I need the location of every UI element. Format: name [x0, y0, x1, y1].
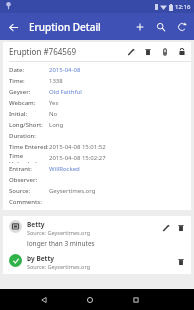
staticText: 2015-04-08 15:02:27 — [49, 154, 106, 162]
staticText: Source: — [9, 187, 31, 195]
staticText: Long — [49, 121, 64, 129]
staticText: 12:16 — [175, 3, 191, 11]
button[interactable]: Delete comment — [173, 254, 188, 269]
staticText: Geyser: — [9, 88, 31, 96]
button[interactable]: Add — [129, 16, 150, 37]
button[interactable]: Edit comment — [158, 220, 173, 235]
staticText: Time: — [9, 77, 25, 85]
button[interactable]: Recent apps — [126, 290, 146, 310]
button[interactable]: Delete — [139, 43, 156, 60]
staticText: by Betty — [27, 254, 54, 263]
staticText: Webcam: — [9, 99, 36, 107]
staticText: Eruption #764569 — [9, 46, 77, 57]
staticText: Source: Geysertimes.org — [27, 263, 91, 270]
button[interactable]: Home — [80, 290, 100, 310]
button[interactable]: Lock — [173, 43, 190, 60]
staticText: Geysertimes.org — [49, 187, 96, 195]
staticText: Yes — [49, 99, 59, 107]
staticText: Duration: — [9, 132, 36, 140]
staticText: Old Faithful — [49, 88, 82, 96]
button[interactable]: Flag — [156, 43, 173, 60]
staticText: Observer: — [9, 176, 38, 184]
staticText: 2015-04-08 — [49, 66, 81, 74]
button[interactable]: Refresh — [171, 16, 192, 37]
staticText: Initial: — [9, 110, 28, 118]
button[interactable]: Betty — [3, 216, 191, 250]
button[interactable]: Back — [34, 290, 54, 310]
staticText: WillRocked — [49, 165, 80, 173]
button[interactable]: Edit — [122, 43, 139, 60]
staticText: longer than 3 minutes — [27, 239, 95, 248]
button[interactable]: by Betty — [3, 250, 191, 272]
staticText: Comments: — [9, 198, 42, 206]
staticText: Eruption Detail — [29, 20, 101, 34]
staticText: Date: — [9, 66, 25, 74]
staticText: 2015-04-08 15:01:52 — [49, 143, 106, 151]
staticText: Betty — [27, 220, 45, 229]
button[interactable]: Delete comment — [173, 220, 188, 235]
staticText: 1338 — [49, 77, 63, 85]
staticText: Time Entered: — [9, 143, 49, 151]
button[interactable]: Back — [0, 14, 26, 40]
staticText: Time Uploaded: — [9, 152, 49, 163]
staticText: Source: Geysertimes.org — [27, 229, 91, 236]
staticText: Entrant: — [9, 165, 32, 173]
button[interactable]: Search — [150, 16, 171, 37]
staticText: No — [49, 110, 58, 118]
staticText: Long/Short: — [9, 121, 43, 129]
